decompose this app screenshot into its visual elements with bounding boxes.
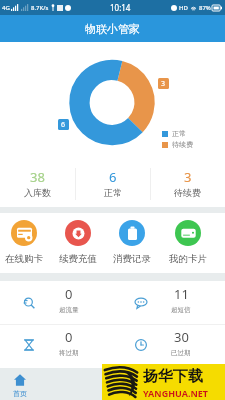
- staticText: 3: [184, 168, 192, 186]
- button[interactable]: 续费充值: [51, 213, 105, 273]
- staticText: 首页: [13, 389, 27, 398]
- staticText: 4G: [2, 4, 10, 12]
- staticText: HD: [179, 4, 188, 12]
- staticText: 6: [109, 168, 117, 186]
- staticText: 超短信: [171, 306, 191, 314]
- staticText: YANGHUA.NET: [143, 387, 209, 399]
- staticText: 已过期: [171, 349, 191, 357]
- button[interactable]: 11: [112, 281, 225, 324]
- staticText: 0: [65, 285, 73, 303]
- staticText: 30: [174, 328, 189, 346]
- staticText: 将过期: [59, 349, 79, 357]
- staticText: 待续费: [172, 140, 193, 149]
- staticText: 在线购卡: [5, 253, 43, 265]
- button[interactable]: 6: [75, 165, 150, 207]
- staticText: 3: [161, 79, 166, 89]
- button[interactable]: 消费记录: [105, 213, 159, 273]
- staticText: 87%: [199, 4, 211, 12]
- staticText: 正常: [172, 129, 186, 138]
- button[interactable]: 在线购卡: [0, 213, 51, 273]
- staticText: 物联小管家: [85, 22, 140, 36]
- staticText: 0: [65, 328, 73, 346]
- staticText: 我的卡片: [169, 253, 207, 265]
- button[interactable]: 3: [150, 165, 225, 207]
- staticText: 续费充值: [59, 253, 97, 265]
- staticText: 超流量: [59, 306, 79, 314]
- button[interactable]: 30: [112, 325, 225, 365]
- staticText: 8.7K/s: [31, 4, 49, 12]
- staticText: 待续费: [174, 187, 201, 198]
- button[interactable]: 首页: [13, 374, 27, 398]
- staticText: 11: [174, 285, 189, 303]
- button[interactable]: 我的卡片: [161, 213, 215, 273]
- staticText: 38: [30, 168, 45, 186]
- staticText: 10:14: [110, 2, 131, 13]
- staticText: 正常: [104, 187, 122, 198]
- staticText: 入库数: [24, 187, 51, 198]
- staticText: 6: [61, 120, 66, 130]
- staticText: 消费记录: [113, 253, 151, 265]
- staticText: 扬华下载: [143, 367, 203, 386]
- button[interactable]: 0: [0, 281, 112, 324]
- button[interactable]: 38: [0, 165, 75, 207]
- button[interactable]: 0: [0, 325, 112, 365]
